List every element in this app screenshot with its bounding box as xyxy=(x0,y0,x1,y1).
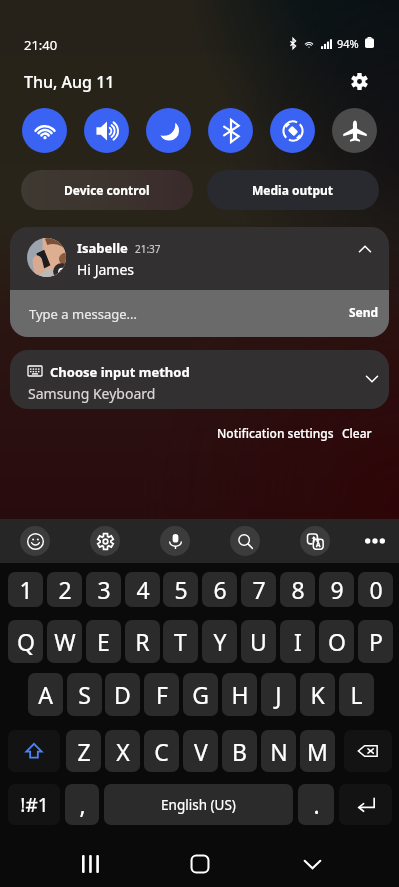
button[interactable]: H xyxy=(222,673,257,716)
staticText: H xyxy=(231,679,249,710)
button[interactable]: Choose input method xyxy=(10,350,389,409)
staticText: . xyxy=(313,789,320,820)
staticText: Type a message... xyxy=(29,305,137,323)
button[interactable]: U xyxy=(241,620,276,663)
staticText: K xyxy=(310,679,325,710)
staticText: I xyxy=(294,626,302,657)
button[interactable]: Keyboard settings xyxy=(90,526,120,556)
button[interactable]: Isabelle xyxy=(10,227,389,290)
button[interactable]: Q xyxy=(8,620,43,663)
button[interactable]: Shift xyxy=(8,730,60,772)
button[interactable]: Home xyxy=(180,844,220,884)
button[interactable]: P xyxy=(358,620,393,663)
button[interactable]: I xyxy=(280,620,315,663)
button[interactable]: Bluetooth xyxy=(208,108,253,153)
staticText: O xyxy=(328,626,346,657)
staticText: P xyxy=(369,626,383,657)
button[interactable]: Backspace xyxy=(344,730,392,772)
button[interactable]: D xyxy=(105,673,140,716)
staticText: T xyxy=(174,626,187,657)
button[interactable]: Recents xyxy=(70,844,110,884)
staticText: 4 xyxy=(136,574,150,605)
staticText: Thu, Aug 11 xyxy=(24,71,115,93)
staticText: J xyxy=(275,679,282,710)
button[interactable]: Settings xyxy=(343,65,375,97)
staticText: E xyxy=(97,626,110,657)
staticText: English (US) xyxy=(161,796,236,814)
button[interactable]: F xyxy=(144,673,179,716)
button[interactable]: 8 xyxy=(280,572,315,607)
button[interactable]: M xyxy=(300,730,335,772)
button[interactable]: A xyxy=(28,673,63,716)
staticText: Clear xyxy=(342,425,372,441)
button[interactable]: 9 xyxy=(319,572,354,607)
button[interactable]: . xyxy=(298,784,334,825)
button[interactable]: Auto rotate xyxy=(270,108,315,153)
button[interactable]: 2 xyxy=(47,572,82,607)
button[interactable]: 4 xyxy=(125,572,160,607)
button[interactable]: Z xyxy=(66,730,101,772)
button[interactable]: Wi-Fi xyxy=(22,108,67,153)
button[interactable]: K xyxy=(300,673,335,716)
button[interactable]: Sound xyxy=(84,108,129,153)
staticText: Device control xyxy=(64,182,150,198)
button[interactable]: 5 xyxy=(163,572,198,607)
staticText: Y xyxy=(213,626,227,657)
button[interactable]: S xyxy=(67,673,102,716)
staticText: C xyxy=(154,736,169,767)
button[interactable]: Notification settings xyxy=(211,420,340,446)
staticText: !#1 xyxy=(20,792,49,818)
button[interactable]: , xyxy=(65,784,99,825)
button[interactable]: C xyxy=(144,730,179,772)
button[interactable]: Clear xyxy=(336,420,378,446)
button[interactable]: Y xyxy=(202,620,237,663)
button[interactable]: 0 xyxy=(358,572,393,607)
staticText: 9 xyxy=(330,574,344,605)
button[interactable]: X xyxy=(105,730,140,772)
button[interactable]: Translate xyxy=(300,526,330,556)
staticText: 6 xyxy=(213,574,227,605)
button[interactable]: More options xyxy=(360,526,390,556)
staticText: 94% xyxy=(337,36,359,51)
button[interactable]: E xyxy=(86,620,121,663)
button[interactable]: Emoji xyxy=(20,526,50,556)
button[interactable]: T xyxy=(163,620,198,663)
button[interactable]: Airplane mode xyxy=(332,108,377,153)
button[interactable]: 7 xyxy=(241,572,276,607)
staticText: Q xyxy=(17,626,35,657)
staticText: Z xyxy=(77,736,91,767)
button[interactable]: R xyxy=(125,620,160,663)
staticText: N xyxy=(270,736,288,767)
staticText: 1 xyxy=(19,574,33,605)
button[interactable]: Voice input xyxy=(160,526,190,556)
staticText: 8 xyxy=(291,574,305,605)
button[interactable]: 1 xyxy=(8,572,43,607)
button[interactable]: V xyxy=(183,730,218,772)
button[interactable]: Do not disturb xyxy=(146,108,191,153)
button[interactable]: B xyxy=(222,730,257,772)
staticText: S xyxy=(78,679,91,710)
button[interactable]: Collapse xyxy=(351,235,379,263)
staticText: L xyxy=(350,679,363,710)
button[interactable]: W xyxy=(47,620,82,663)
button[interactable]: 3 xyxy=(86,572,121,607)
button[interactable]: Device control xyxy=(21,170,193,210)
button[interactable]: G xyxy=(183,673,218,716)
button[interactable]: English (US) xyxy=(104,784,293,825)
button[interactable]: L xyxy=(339,673,374,716)
button[interactable]: Media output xyxy=(207,170,379,210)
staticText: V xyxy=(194,736,208,767)
button[interactable]: N xyxy=(261,730,296,772)
button[interactable]: O xyxy=(319,620,354,663)
button[interactable]: Enter xyxy=(339,784,392,825)
staticText: Send xyxy=(349,304,379,320)
button[interactable]: 6 xyxy=(202,572,237,607)
button[interactable]: J xyxy=(261,673,296,716)
staticText: Notification settings xyxy=(217,425,334,441)
button[interactable]: !#1 xyxy=(8,784,60,825)
button[interactable]: Hide keyboard xyxy=(292,844,332,884)
staticText: Samsung Keyboard xyxy=(28,384,156,403)
staticText: Media output xyxy=(252,182,334,198)
button[interactable]: Search xyxy=(230,526,260,556)
button[interactable]: Type a message... xyxy=(10,290,389,337)
